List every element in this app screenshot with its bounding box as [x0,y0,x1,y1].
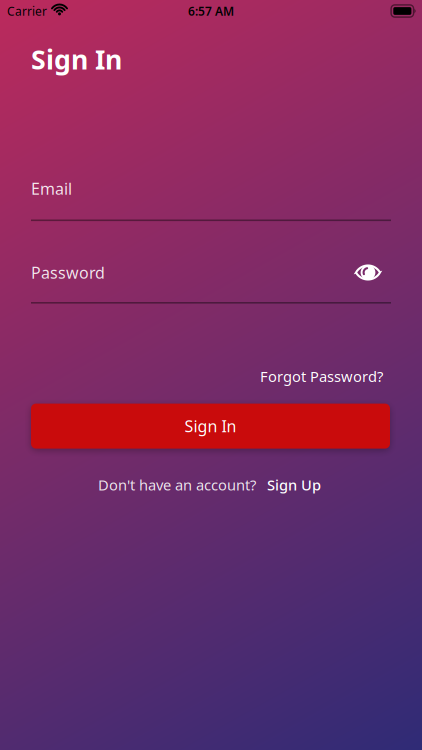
staticText: Sign In [31,41,122,77]
staticText: Email [31,178,72,199]
button[interactable]: Sign Up [267,475,321,494]
button[interactable]: Show password [354,259,381,286]
staticText: Sign In [184,415,236,437]
button[interactable]: Sign In [31,404,390,449]
staticText: 6:57 AM [188,3,234,19]
staticText: Don't have an account? [98,475,256,494]
staticText: Password [31,262,105,283]
staticText: Sign Up [267,475,321,494]
staticText: Carrier [7,3,47,19]
button[interactable]: Forgot Password? [260,366,383,386]
staticText: Forgot Password? [260,366,383,386]
